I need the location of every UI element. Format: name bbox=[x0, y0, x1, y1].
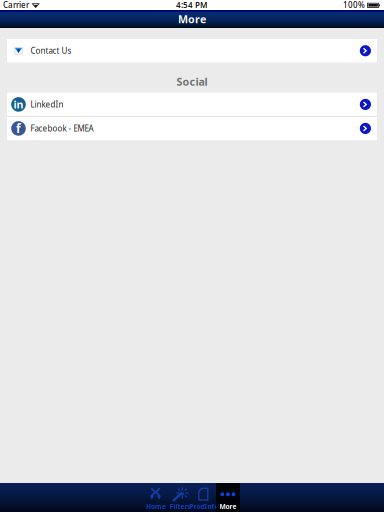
staticText: f bbox=[16, 120, 21, 136]
staticText: LinkedIn bbox=[30, 99, 63, 110]
staticText: More bbox=[219, 502, 236, 511]
staticText: Carrier bbox=[3, 0, 29, 10]
button[interactable]: Home bbox=[144, 483, 168, 512]
staticText: More bbox=[178, 12, 206, 26]
staticText: Home bbox=[146, 502, 166, 511]
staticText: Facebook - EMEA bbox=[30, 123, 93, 134]
staticText: Filters bbox=[169, 502, 190, 511]
staticText: Social bbox=[176, 74, 207, 89]
button[interactable]: f bbox=[7, 117, 377, 140]
staticText: 100% bbox=[343, 0, 365, 10]
staticText: in bbox=[13, 97, 23, 111]
button[interactable]: ProdInfo bbox=[192, 483, 216, 512]
button[interactable]: Contact Us bbox=[7, 39, 377, 62]
staticText: Contact Us bbox=[30, 45, 71, 56]
button[interactable]: More bbox=[216, 483, 240, 512]
staticText: ProdInfo bbox=[189, 502, 218, 511]
staticText: 4:54 PM bbox=[176, 0, 207, 10]
button[interactable]: in bbox=[7, 93, 377, 116]
button[interactable]: Filters bbox=[168, 483, 192, 512]
